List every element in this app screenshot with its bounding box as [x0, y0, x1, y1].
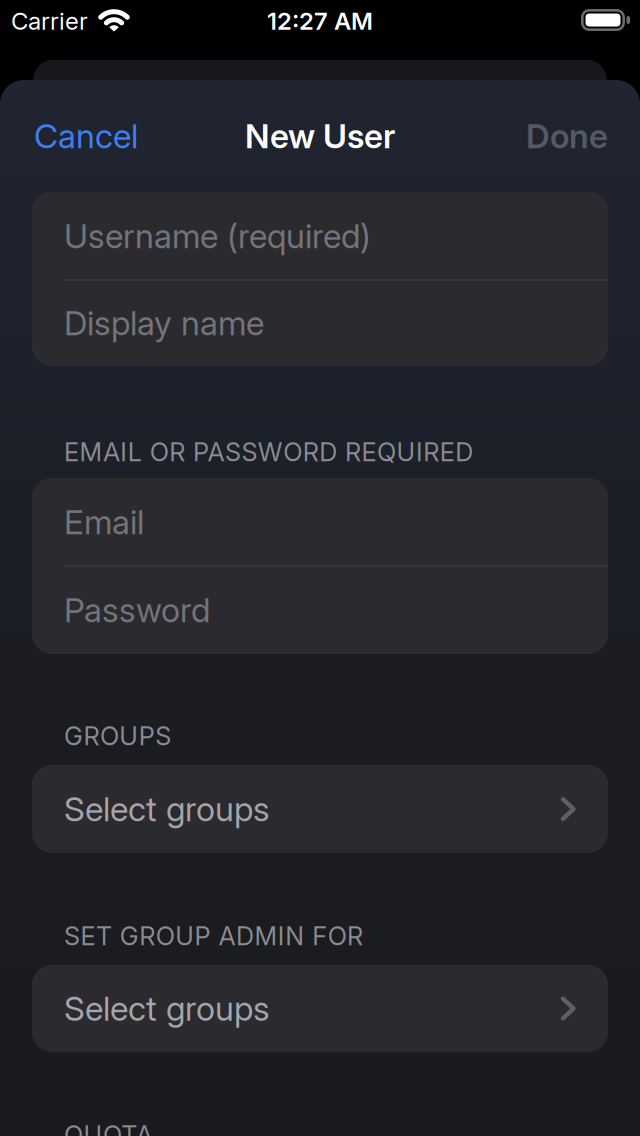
button[interactable]: Password	[32, 566, 608, 654]
staticText: EMAIL OR PASSWORD REQUIRED	[64, 437, 473, 467]
button[interactable]: Username (required)	[32, 192, 608, 280]
staticText: New User	[245, 116, 395, 156]
staticText: Username (required)	[64, 216, 371, 256]
staticText: QUOTA	[64, 1120, 153, 1136]
staticText: SET GROUP ADMIN FOR	[64, 921, 363, 951]
staticText: Email	[64, 502, 144, 542]
staticText: Carrier	[11, 7, 88, 35]
staticText: Done	[526, 116, 608, 156]
staticText: Select groups	[64, 789, 270, 829]
staticText: 12:27 AM	[267, 7, 373, 35]
staticText: Display name	[64, 303, 264, 343]
staticText: Password	[64, 590, 210, 630]
button[interactable]: Select groups	[32, 765, 608, 853]
button[interactable]: Done	[448, 114, 608, 158]
button[interactable]: Display name	[32, 280, 608, 366]
staticText: Cancel	[34, 116, 138, 156]
staticText: GROUPS	[64, 721, 171, 751]
staticText: Select groups	[64, 989, 270, 1028]
button[interactable]: Cancel	[34, 114, 138, 158]
button[interactable]: Email	[32, 478, 608, 566]
button[interactable]: Select groups	[32, 965, 608, 1052]
